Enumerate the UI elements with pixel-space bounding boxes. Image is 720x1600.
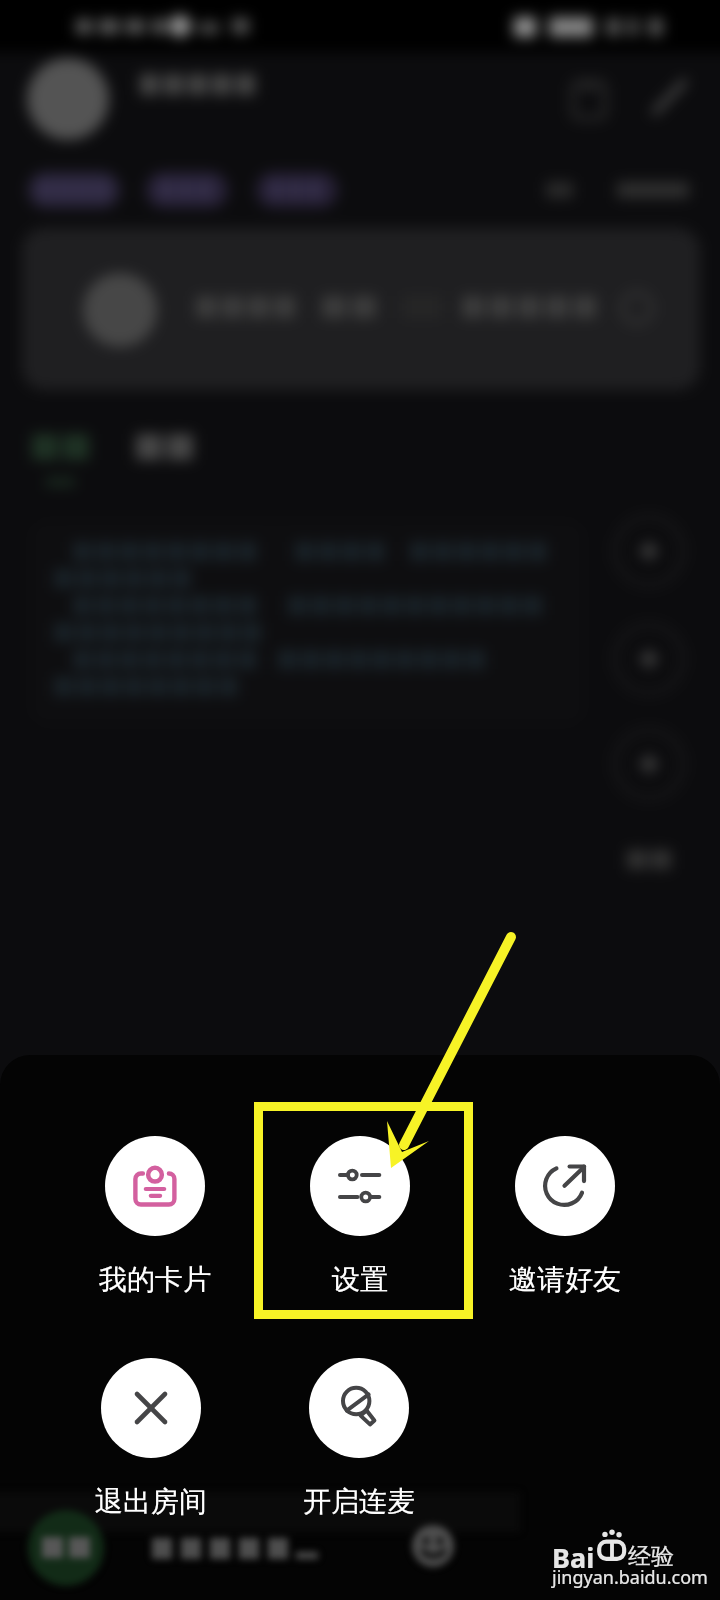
staticText: 开启连麦	[303, 1484, 415, 1519]
staticText: 经验	[628, 1542, 674, 1571]
staticText: 邀请好友	[509, 1262, 621, 1297]
other: 退出房间	[127, 1384, 175, 1432]
staticText: 设置	[332, 1262, 388, 1297]
other: 我的卡片	[131, 1162, 179, 1210]
other: 设置	[336, 1162, 384, 1210]
staticText: 我的卡片	[99, 1262, 211, 1297]
other: 邀请好友	[541, 1162, 589, 1210]
button[interactable]: 设置	[300, 1136, 420, 1297]
staticText: 退出房间	[95, 1484, 207, 1519]
button[interactable]: 邀请好友	[505, 1136, 625, 1297]
other: 开启连麦	[335, 1384, 383, 1432]
button[interactable]: 开启连麦	[299, 1358, 419, 1519]
button[interactable]: 退出房间	[91, 1358, 211, 1519]
staticText: jingyan.baidu.com	[552, 1565, 708, 1590]
button[interactable]: 我的卡片	[95, 1136, 215, 1297]
staticText: Bai	[552, 1539, 595, 1576]
